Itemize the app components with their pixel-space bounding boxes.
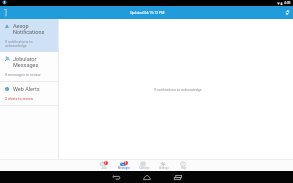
staticText: 1: [125, 162, 127, 165]
staticText: Settings: [159, 167, 169, 170]
staticText: Updated 04:15:13 PM: [130, 11, 165, 15]
button[interactable]: 1: [114, 159, 134, 171]
button[interactable]: Jobulator home: [0, 6, 12, 19]
button[interactable]: Calendar: [134, 159, 154, 171]
staticText: Jobs: [101, 167, 107, 170]
staticText: Messages: [118, 167, 130, 170]
button[interactable]: Recent apps: [162, 171, 193, 183]
button[interactable]: Home: [131, 171, 162, 183]
staticText: Jobulator: [13, 56, 37, 62]
staticText: Help: [181, 167, 187, 170]
staticText: 0 notifications to acknowledge: [154, 88, 202, 92]
staticText: Calendar: [139, 167, 150, 170]
staticText: acknowledge: [5, 44, 27, 48]
button[interactable]: Aesop: [0, 19, 58, 52]
button[interactable]: Jobulator: [0, 52, 58, 81]
button[interactable]: Back: [100, 171, 131, 183]
staticText: 0 messages to review: [5, 73, 41, 77]
staticText: Messages: [13, 62, 39, 68]
staticText: 1: [105, 162, 107, 165]
staticText: Web Alerts: [13, 86, 40, 92]
button[interactable]: Help: [174, 159, 194, 171]
button[interactable]: Refresh: [281, 6, 293, 19]
button[interactable]: Settings: [154, 159, 174, 171]
staticText: 2 alerts to review: [5, 97, 33, 101]
staticText: Notifications: [13, 29, 45, 35]
staticText: Aesop: [13, 23, 29, 29]
button[interactable]: Web Alerts: [0, 82, 58, 105]
button[interactable]: 1: [94, 159, 114, 171]
staticText: 0 notifications to: [5, 40, 33, 44]
staticText: 4:05: [284, 1, 291, 5]
